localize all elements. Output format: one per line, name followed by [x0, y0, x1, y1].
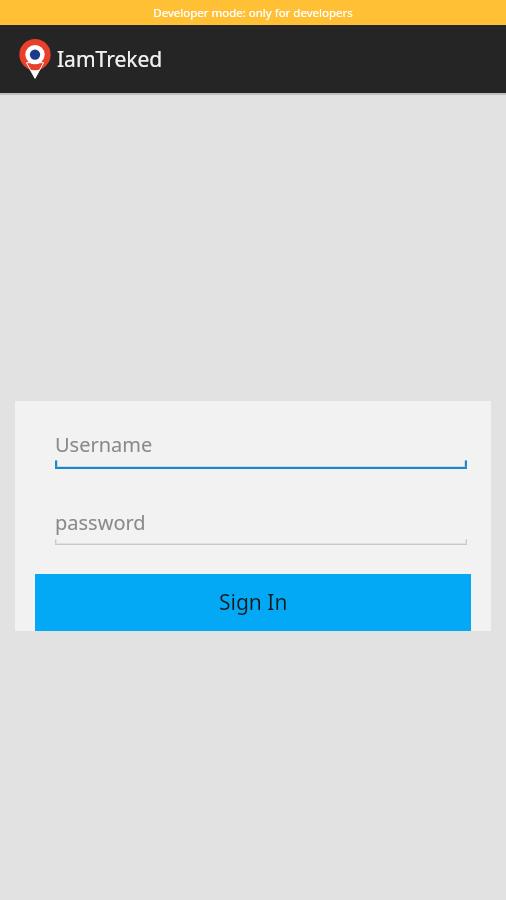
staticText: Sign In	[219, 588, 288, 617]
other: IamTreked logo	[18, 37, 52, 81]
staticText: password	[55, 509, 146, 536]
staticText: Username	[55, 431, 153, 458]
button[interactable]: Username	[55, 427, 467, 469]
staticText: IamTreked	[57, 45, 163, 74]
staticText: Developer mode: only for developers	[153, 5, 353, 21]
button[interactable]: Sign In	[35, 574, 471, 631]
button[interactable]: password	[55, 505, 467, 545]
